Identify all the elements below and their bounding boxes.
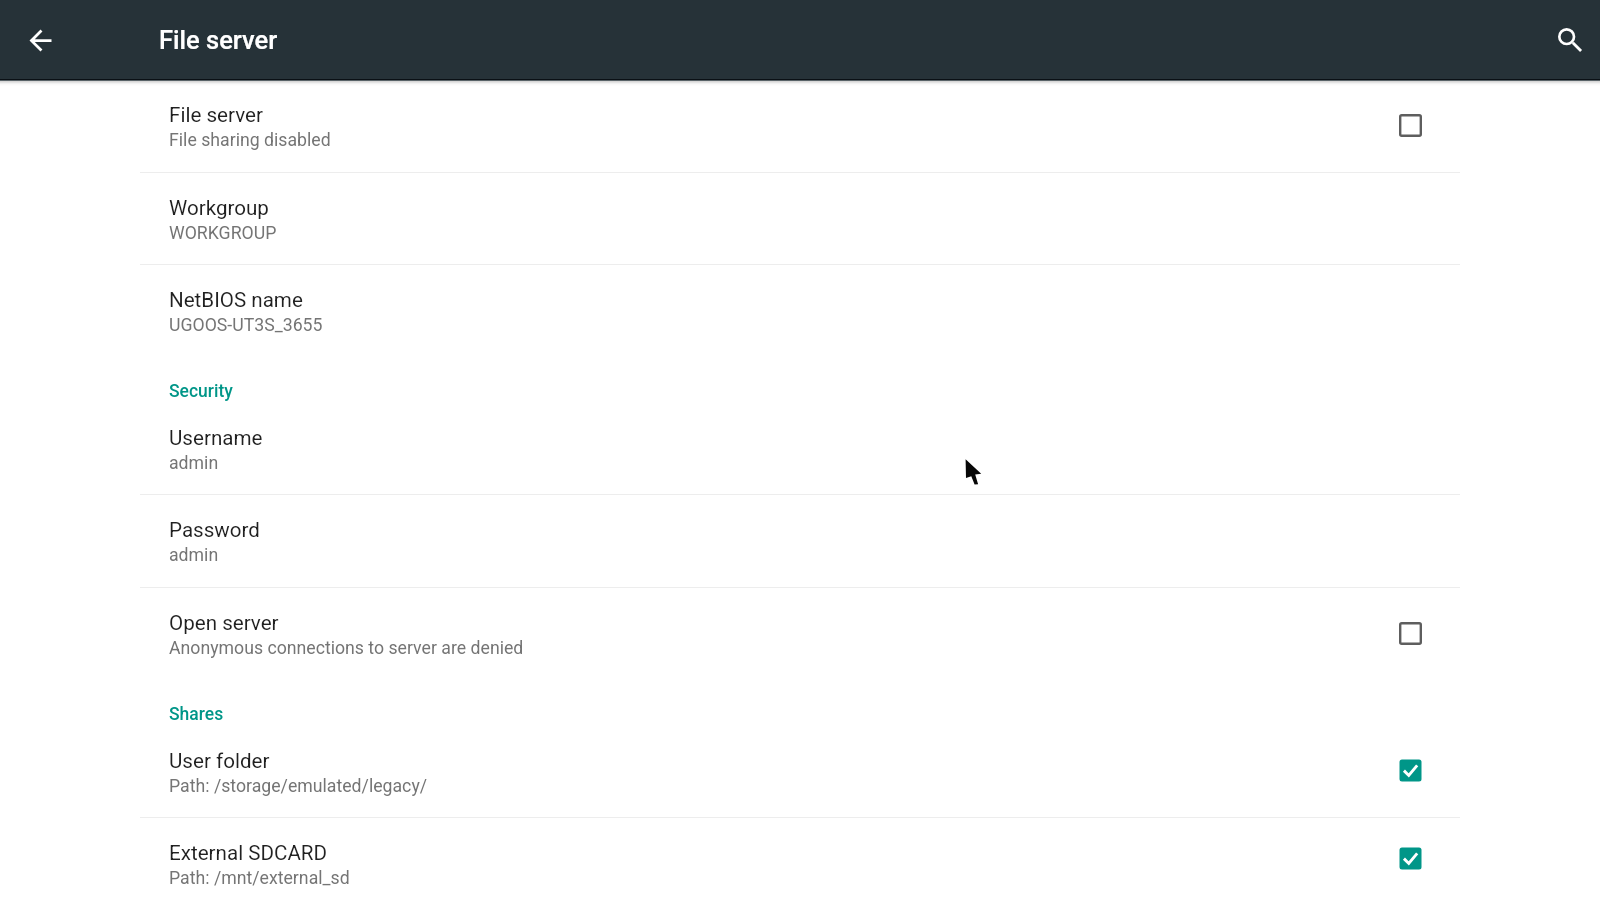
staticText: Open server <box>169 611 279 635</box>
button[interactable]: Username <box>0 403 1600 494</box>
staticText: File server <box>169 103 263 127</box>
staticText: Shares <box>169 704 224 725</box>
staticText: File server <box>159 25 278 55</box>
staticText: Security <box>169 381 233 402</box>
staticText: admin <box>169 453 219 474</box>
staticText: NetBIOS name <box>169 288 303 312</box>
button[interactable]: Workgroup <box>0 173 1600 264</box>
button[interactable]: Open server <box>0 588 1600 680</box>
button[interactable]: External SDCARD <box>1399 847 1422 870</box>
button[interactable]: Password <box>0 495 1600 587</box>
staticText: admin <box>169 545 219 566</box>
staticText: UGOOS-UT3S_3655 <box>169 315 323 336</box>
staticText: External SDCARD <box>169 841 328 865</box>
staticText: Path: /storage/emulated/legacy/ <box>169 776 428 797</box>
staticText: Username <box>169 426 263 450</box>
staticText: User folder <box>169 749 270 773</box>
button[interactable]: Search <box>1546 16 1594 64</box>
staticText: Anonymous connections to server are deni… <box>169 638 524 659</box>
staticText: Workgroup <box>169 196 269 220</box>
staticText: Path: /mnt/external_sd <box>169 868 350 889</box>
staticText: Password <box>169 518 260 542</box>
button[interactable]: File server <box>0 80 1600 172</box>
button[interactable]: Open server <box>1399 622 1422 645</box>
staticText: File sharing disabled <box>169 130 331 151</box>
button[interactable]: Navigate up <box>16 16 64 64</box>
button[interactable]: NetBIOS name <box>0 265 1600 357</box>
button[interactable]: External SDCARD <box>0 818 1600 900</box>
button[interactable]: User folder <box>1399 759 1422 782</box>
staticText: WORKGROUP <box>169 223 277 244</box>
button[interactable]: User folder <box>0 726 1600 817</box>
button[interactable]: File server <box>1399 114 1422 137</box>
